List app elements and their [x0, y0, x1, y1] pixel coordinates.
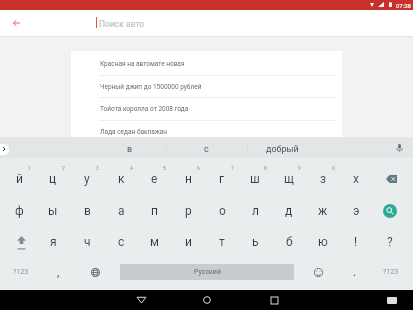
- staticText: в: [127, 144, 133, 155]
- button[interactable]: Switch keyboard: [382, 290, 402, 310]
- button[interactable]: з: [306, 165, 340, 193]
- staticText: 9: [298, 165, 301, 171]
- staticText: ?123: [383, 268, 399, 276]
- button[interactable]: ы: [36, 197, 70, 225]
- button[interactable]: л: [238, 197, 272, 225]
- button[interactable]: с: [176, 139, 236, 160]
- staticText: !: [354, 235, 358, 249]
- staticText: о: [219, 204, 226, 218]
- staticText: 1: [28, 165, 31, 171]
- button[interactable]: Home: [197, 290, 217, 310]
- button[interactable]: Красная на автомате новая: [71, 52, 342, 75]
- button[interactable]: Emoji: [301, 258, 335, 286]
- button[interactable]: в: [70, 197, 104, 225]
- staticText: в: [84, 204, 91, 218]
- staticText: к: [118, 172, 125, 186]
- staticText: ж: [318, 204, 328, 218]
- staticText: д: [285, 204, 293, 218]
- button[interactable]: ?123: [4, 258, 38, 286]
- staticText: ц: [49, 172, 57, 186]
- staticText: ?: [387, 235, 393, 249]
- staticText: щ: [284, 172, 294, 186]
- staticText: 4: [130, 165, 133, 171]
- staticText: н: [185, 172, 192, 186]
- button[interactable]: ф: [2, 197, 36, 225]
- button[interactable]: Search: [373, 197, 407, 225]
- button[interactable]: е: [137, 165, 171, 193]
- staticText: г: [219, 172, 225, 186]
- button[interactable]: г: [205, 165, 239, 193]
- staticText: я: [50, 235, 57, 249]
- button[interactable]: Русский: [120, 264, 294, 280]
- staticText: т: [219, 235, 225, 249]
- button[interactable]: д: [272, 197, 306, 225]
- button[interactable]: ?123: [374, 258, 408, 286]
- button[interactable]: добрый: [252, 139, 312, 160]
- staticText: Тойота королла от 2008 года: [100, 105, 189, 113]
- staticText: х: [353, 172, 359, 186]
- staticText: у: [84, 172, 90, 186]
- staticText: 3: [96, 165, 99, 171]
- button[interactable]: Recent apps: [264, 290, 284, 310]
- staticText: ь: [252, 235, 259, 249]
- button[interactable]: Черный джип до 1500000 рублей: [71, 75, 342, 98]
- button[interactable]: Shift: [4, 229, 38, 257]
- button[interactable]: э: [339, 197, 373, 225]
- button[interactable]: у: [70, 165, 104, 193]
- button[interactable]: в: [100, 139, 160, 160]
- staticText: 6: [197, 165, 200, 171]
- button[interactable]: н: [171, 165, 205, 193]
- button[interactable]: п: [137, 197, 171, 225]
- button[interactable]: Тойота королла от 2008 года: [71, 97, 342, 120]
- button[interactable]: !: [339, 228, 373, 256]
- button[interactable]: ?: [373, 228, 407, 256]
- staticText: б: [286, 235, 293, 249]
- button[interactable]: ю: [306, 228, 340, 256]
- button[interactable]: т: [205, 228, 239, 256]
- staticText: Лада седан баклажан: [100, 128, 168, 136]
- button[interactable]: Back: [131, 290, 151, 310]
- staticText: й: [16, 172, 23, 186]
- staticText: ф: [15, 204, 24, 218]
- button[interactable]: о: [205, 197, 239, 225]
- button[interactable]: Backspace: [373, 165, 407, 193]
- button[interactable]: б: [272, 228, 306, 256]
- button[interactable]: ь: [238, 228, 272, 256]
- button[interactable]: к: [104, 165, 138, 193]
- button[interactable]: ш: [238, 165, 272, 193]
- staticText: ч: [84, 235, 91, 249]
- staticText: е: [151, 172, 158, 186]
- button[interactable]: Back: [5, 12, 27, 34]
- button[interactable]: й: [2, 165, 36, 193]
- button[interactable]: х: [339, 165, 373, 193]
- button[interactable]: Лада седан баклажан: [71, 120, 342, 143]
- staticText: 5: [163, 165, 166, 171]
- button[interactable]: .: [338, 258, 372, 286]
- staticText: ы: [48, 204, 58, 218]
- staticText: з: [320, 172, 327, 186]
- button[interactable]: Change language: [78, 258, 112, 286]
- button[interactable]: с: [104, 228, 138, 256]
- button[interactable]: More suggestions: [0, 144, 9, 155]
- staticText: ,: [57, 265, 60, 279]
- button[interactable]: а: [104, 197, 138, 225]
- button[interactable]: ж: [306, 197, 340, 225]
- staticText: добрый: [266, 144, 299, 155]
- staticText: .: [353, 265, 357, 279]
- button[interactable]: щ: [272, 165, 306, 193]
- staticText: 8: [264, 165, 267, 171]
- button[interactable]: ,: [41, 258, 75, 286]
- staticText: и: [185, 235, 192, 249]
- staticText: ?123: [13, 268, 29, 276]
- button[interactable]: м: [137, 228, 171, 256]
- staticText: Черный джип до 1500000 рублей: [100, 83, 202, 91]
- staticText: р: [185, 204, 192, 218]
- button[interactable]: р: [171, 197, 205, 225]
- button[interactable]: я: [36, 228, 70, 256]
- button[interactable]: и: [171, 228, 205, 256]
- button[interactable]: ч: [70, 228, 104, 256]
- staticText: ю: [318, 235, 328, 249]
- button[interactable]: ц: [36, 165, 70, 193]
- staticText: Поиск авто: [99, 19, 145, 29]
- button[interactable]: Voice input: [389, 137, 410, 158]
